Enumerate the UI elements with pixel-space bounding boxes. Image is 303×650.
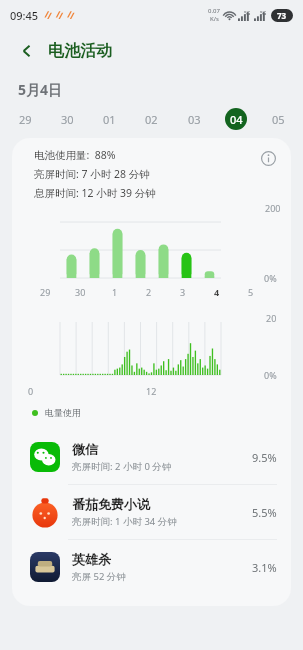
staticText: 30 <box>61 112 74 127</box>
staticText: 09:45 <box>10 8 39 23</box>
staticText: 04 <box>230 112 243 127</box>
staticText: 29 <box>19 112 32 127</box>
staticText: 03 <box>188 112 201 127</box>
button[interactable]: 微信 <box>12 430 291 484</box>
staticText: 5月4日 <box>18 80 63 99</box>
staticText: 02 <box>145 112 158 127</box>
staticText: 5G <box>244 10 251 17</box>
button[interactable]: Back <box>12 36 42 66</box>
staticText: 5 <box>248 286 254 298</box>
staticText: 亮屏 52 分钟 <box>72 570 126 583</box>
staticText: 9.5% <box>252 450 277 465</box>
staticText: 3 <box>180 286 186 298</box>
button[interactable]: 01 <box>98 108 120 130</box>
button[interactable]: 29 <box>14 108 36 130</box>
button[interactable]: 04 <box>225 108 247 130</box>
staticText: 亮屏时间: 2 小时 0 分钟 <box>72 460 172 473</box>
button[interactable]: 英雄杀 <box>12 540 291 594</box>
staticText: 0 <box>28 385 34 397</box>
button[interactable]: 30 <box>56 108 78 130</box>
staticText: 200 <box>265 202 281 214</box>
staticText: 20 <box>266 312 277 324</box>
button[interactable]: Info <box>257 147 279 169</box>
staticText: 亮屏时间: 1 小时 34 分钟 <box>72 515 177 528</box>
staticText: 05 <box>272 112 285 127</box>
staticText: 0% <box>264 369 277 381</box>
staticText: 息屏时间: 12 小时 39 分钟 <box>34 186 156 200</box>
staticText: K/s <box>210 15 219 23</box>
staticText: 01 <box>103 112 116 127</box>
staticText: 电池使用量: 88% <box>34 148 116 162</box>
staticText: 5.5% <box>252 505 277 520</box>
staticText: 英雄杀 <box>72 551 111 567</box>
button[interactable]: 05 <box>267 108 289 130</box>
staticText: 30 <box>75 286 86 298</box>
staticText: 1 <box>112 286 118 298</box>
staticText: 0.07 <box>208 7 220 15</box>
staticText: 12 <box>146 385 157 397</box>
staticText: 4 <box>214 286 220 298</box>
staticText: 73 <box>277 10 287 21</box>
staticText: 3.1% <box>252 560 277 575</box>
button[interactable]: 番茄免费小说 <box>12 485 291 539</box>
staticText: 亮屏时间: 7 小时 28 分钟 <box>34 167 150 181</box>
staticText: 电池活动 <box>48 41 112 61</box>
staticText: 2 <box>146 286 152 298</box>
staticText: 电量使用 <box>45 407 81 418</box>
staticText: 番茄免费小说 <box>72 496 150 512</box>
staticText: 微信 <box>72 441 98 457</box>
staticText: 0% <box>264 272 277 284</box>
button[interactable]: 02 <box>140 108 162 130</box>
button[interactable]: 03 <box>183 108 205 130</box>
staticText: 5G <box>260 10 267 17</box>
staticText: 29 <box>40 286 51 298</box>
